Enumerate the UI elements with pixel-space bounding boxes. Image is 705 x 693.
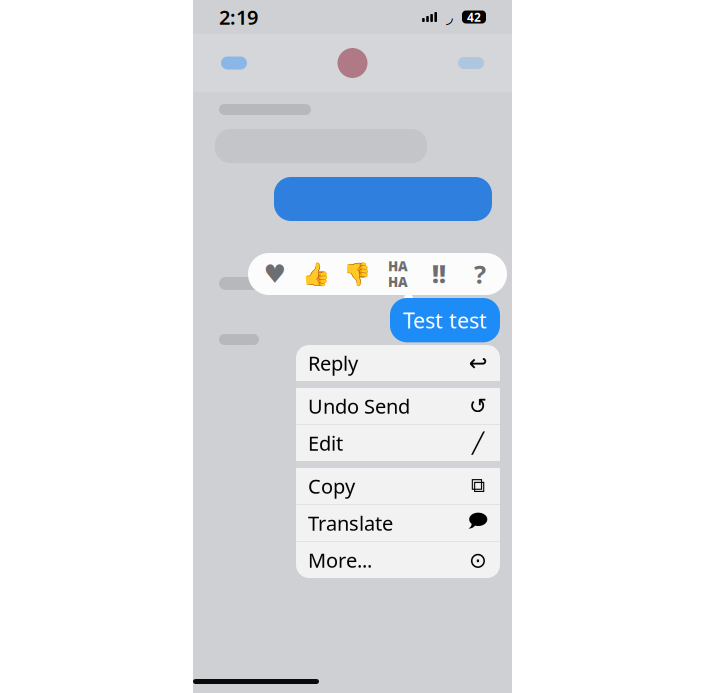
button[interactable]: Undo Send — [296, 388, 500, 424]
staticText: Edit — [308, 430, 343, 456]
staticText: Reply — [308, 350, 358, 376]
staticText: Undo Send — [308, 393, 410, 419]
staticText: ╱ — [472, 432, 484, 454]
staticText: ↺ — [469, 394, 487, 418]
button[interactable]: Reply — [296, 345, 500, 381]
button[interactable]: Thumbs up — [301, 259, 331, 289]
staticText: Copy — [308, 473, 355, 499]
button[interactable]: Haha — [383, 259, 413, 289]
staticText: 👎 — [343, 261, 371, 287]
button[interactable]: Love — [260, 259, 290, 289]
staticText: ⧉ — [471, 476, 485, 496]
staticText: ? — [474, 257, 486, 291]
button[interactable]: Translate — [296, 505, 500, 541]
staticText: HA — [388, 273, 408, 291]
staticText: ◞ — [446, 7, 453, 27]
staticText: HA — [388, 257, 408, 275]
button[interactable]: Question — [465, 259, 495, 289]
staticText: 42 — [467, 9, 481, 25]
staticText: Translate — [308, 510, 393, 536]
button[interactable]: Copy — [296, 468, 500, 504]
staticText: 👍 — [302, 261, 330, 287]
staticText: More... — [308, 547, 372, 573]
button[interactable]: Exclamation — [424, 259, 454, 289]
button[interactable]: More... — [296, 542, 500, 578]
staticText: Test test — [403, 306, 487, 334]
staticText: !! — [432, 258, 446, 290]
staticText: 🗩 — [467, 507, 488, 538]
staticText: ↩ — [468, 350, 487, 376]
staticText: ♥ — [263, 260, 286, 288]
button[interactable]: Edit — [296, 425, 500, 461]
button[interactable]: Thumbs down — [342, 259, 372, 289]
staticText: 2:19 — [219, 4, 258, 30]
staticText: ⊙ — [469, 548, 487, 572]
